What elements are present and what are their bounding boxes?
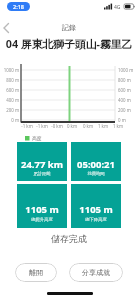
staticText: 400 m	[0, 97, 19, 103]
staticText: 24.77 km	[17, 158, 67, 171]
staticText: 分享成就	[82, 268, 110, 277]
staticText: 總下降高度	[71, 217, 121, 222]
staticText: 2:18	[13, 3, 24, 10]
staticText: 600 m	[0, 87, 19, 93]
staticText: 儲存完成	[0, 233, 138, 244]
staticText: -1 km	[19, 123, 35, 129]
staticText: 花費時間	[71, 171, 121, 176]
button[interactable]: 分享成就	[69, 263, 123, 282]
staticText: 1105 m	[71, 203, 121, 216]
staticText: 600 m	[118, 87, 131, 93]
staticText: 高度	[32, 135, 42, 141]
staticText: 0 km	[64, 123, 80, 129]
staticText: 05:00:21	[71, 158, 121, 171]
button[interactable]	[0, 21, 20, 35]
staticText: 800 m	[118, 77, 131, 83]
staticText: 1000 m	[118, 67, 134, 73]
staticText: 累計距離	[17, 171, 67, 176]
staticText: 0 km	[80, 123, 96, 129]
staticText: 200 m	[118, 107, 131, 113]
staticText: -0 km	[49, 123, 65, 129]
staticText: 離開	[29, 268, 43, 277]
staticText: 1 km	[110, 123, 126, 129]
staticText: 記錄	[0, 23, 138, 32]
staticText: 4G	[114, 4, 121, 11]
staticText: 04 屏東北獅子頭山-霧里乙	[0, 36, 138, 51]
button[interactable]: 1105 m	[71, 184, 121, 228]
button[interactable]: 05:00:21	[71, 142, 121, 181]
staticText: 400 m	[118, 97, 131, 103]
staticText: -1 km	[34, 123, 50, 129]
staticText: 1000 m	[0, 67, 19, 73]
staticText: 800 m	[0, 77, 19, 83]
staticText: 總爬升高度	[17, 217, 67, 222]
staticText: 1 km	[95, 123, 111, 129]
staticText: 1105 m	[17, 203, 67, 216]
button[interactable]: 離開	[15, 263, 57, 282]
staticText: 0 m	[0, 117, 19, 123]
button[interactable]: 1105 m	[17, 184, 67, 228]
staticText: 200 m	[0, 107, 19, 113]
button[interactable]: 24.77 km	[17, 142, 67, 181]
staticText: 0 m	[118, 117, 126, 123]
